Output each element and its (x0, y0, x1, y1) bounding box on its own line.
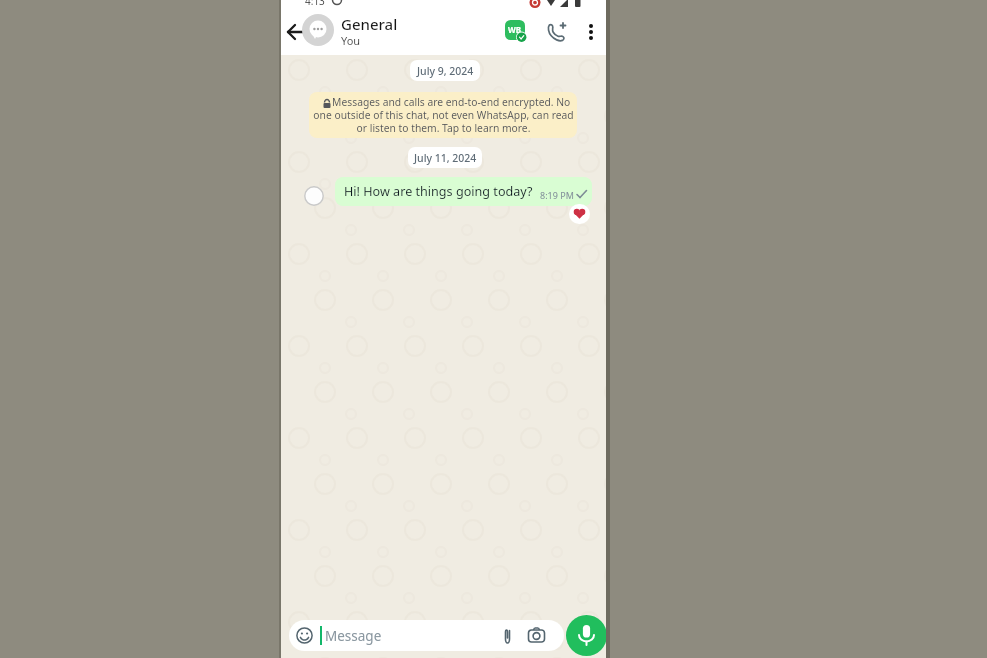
button[interactable] (569, 204, 590, 224)
staticText: Hi! How are things going today? (344, 183, 533, 200)
button[interactable] (566, 615, 607, 656)
button[interactable]: Messages and calls are end-to-end encryp… (309, 92, 577, 138)
button[interactable] (302, 14, 334, 46)
staticText: Message (325, 627, 382, 645)
staticText: Messages and calls are end-to-end encryp… (313, 95, 574, 135)
staticText: July 9, 2024 (417, 64, 474, 78)
button[interactable]: WB (505, 19, 527, 41)
staticText: July 11, 2024 (414, 151, 477, 165)
button[interactable] (285, 21, 307, 43)
staticText: 8:19 PM (540, 189, 574, 201)
button[interactable] (545, 21, 567, 43)
staticText: WB (508, 24, 522, 35)
staticText: You (341, 33, 361, 48)
button[interactable]: Hi! How are things going today? (335, 177, 592, 206)
button[interactable] (582, 21, 600, 43)
staticText: 4:13 (305, 0, 325, 8)
button[interactable]: Message (289, 620, 564, 651)
staticText: General (341, 14, 398, 34)
